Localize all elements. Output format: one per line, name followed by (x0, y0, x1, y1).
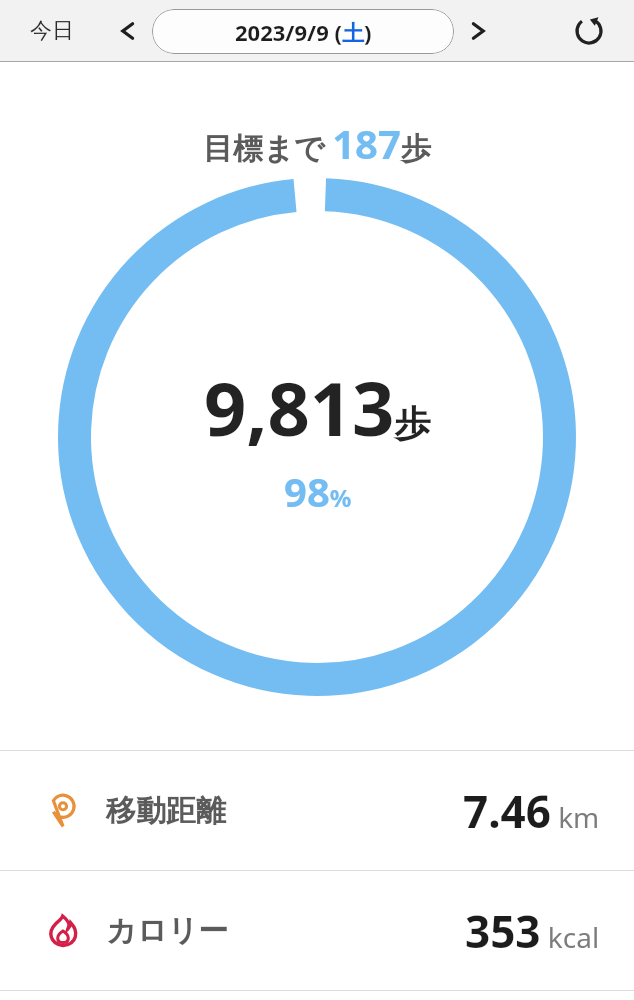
button[interactable]: カロリー (0, 871, 634, 990)
staticText: 9,813歩 (204, 357, 431, 458)
button[interactable]: 2023/9/9 (土) (152, 9, 454, 54)
button[interactable]: Refresh (564, 6, 614, 56)
staticText: 目標まで 187歩 (203, 116, 431, 170)
staticText: カロリー (106, 912, 229, 950)
button[interactable]: 移動距離 (0, 751, 634, 870)
staticText: 今日 (30, 17, 74, 45)
staticText: 353 kcal (465, 901, 600, 961)
staticText: 98% (284, 464, 352, 518)
button[interactable]: Next day (458, 10, 500, 52)
button[interactable]: 今日 (26, 11, 78, 51)
button[interactable]: Previous day (106, 10, 148, 52)
staticText: 2023/9/9 (土) (235, 17, 372, 47)
staticText: 移動距離 (106, 792, 226, 830)
staticText: 7.46 km (463, 781, 600, 841)
